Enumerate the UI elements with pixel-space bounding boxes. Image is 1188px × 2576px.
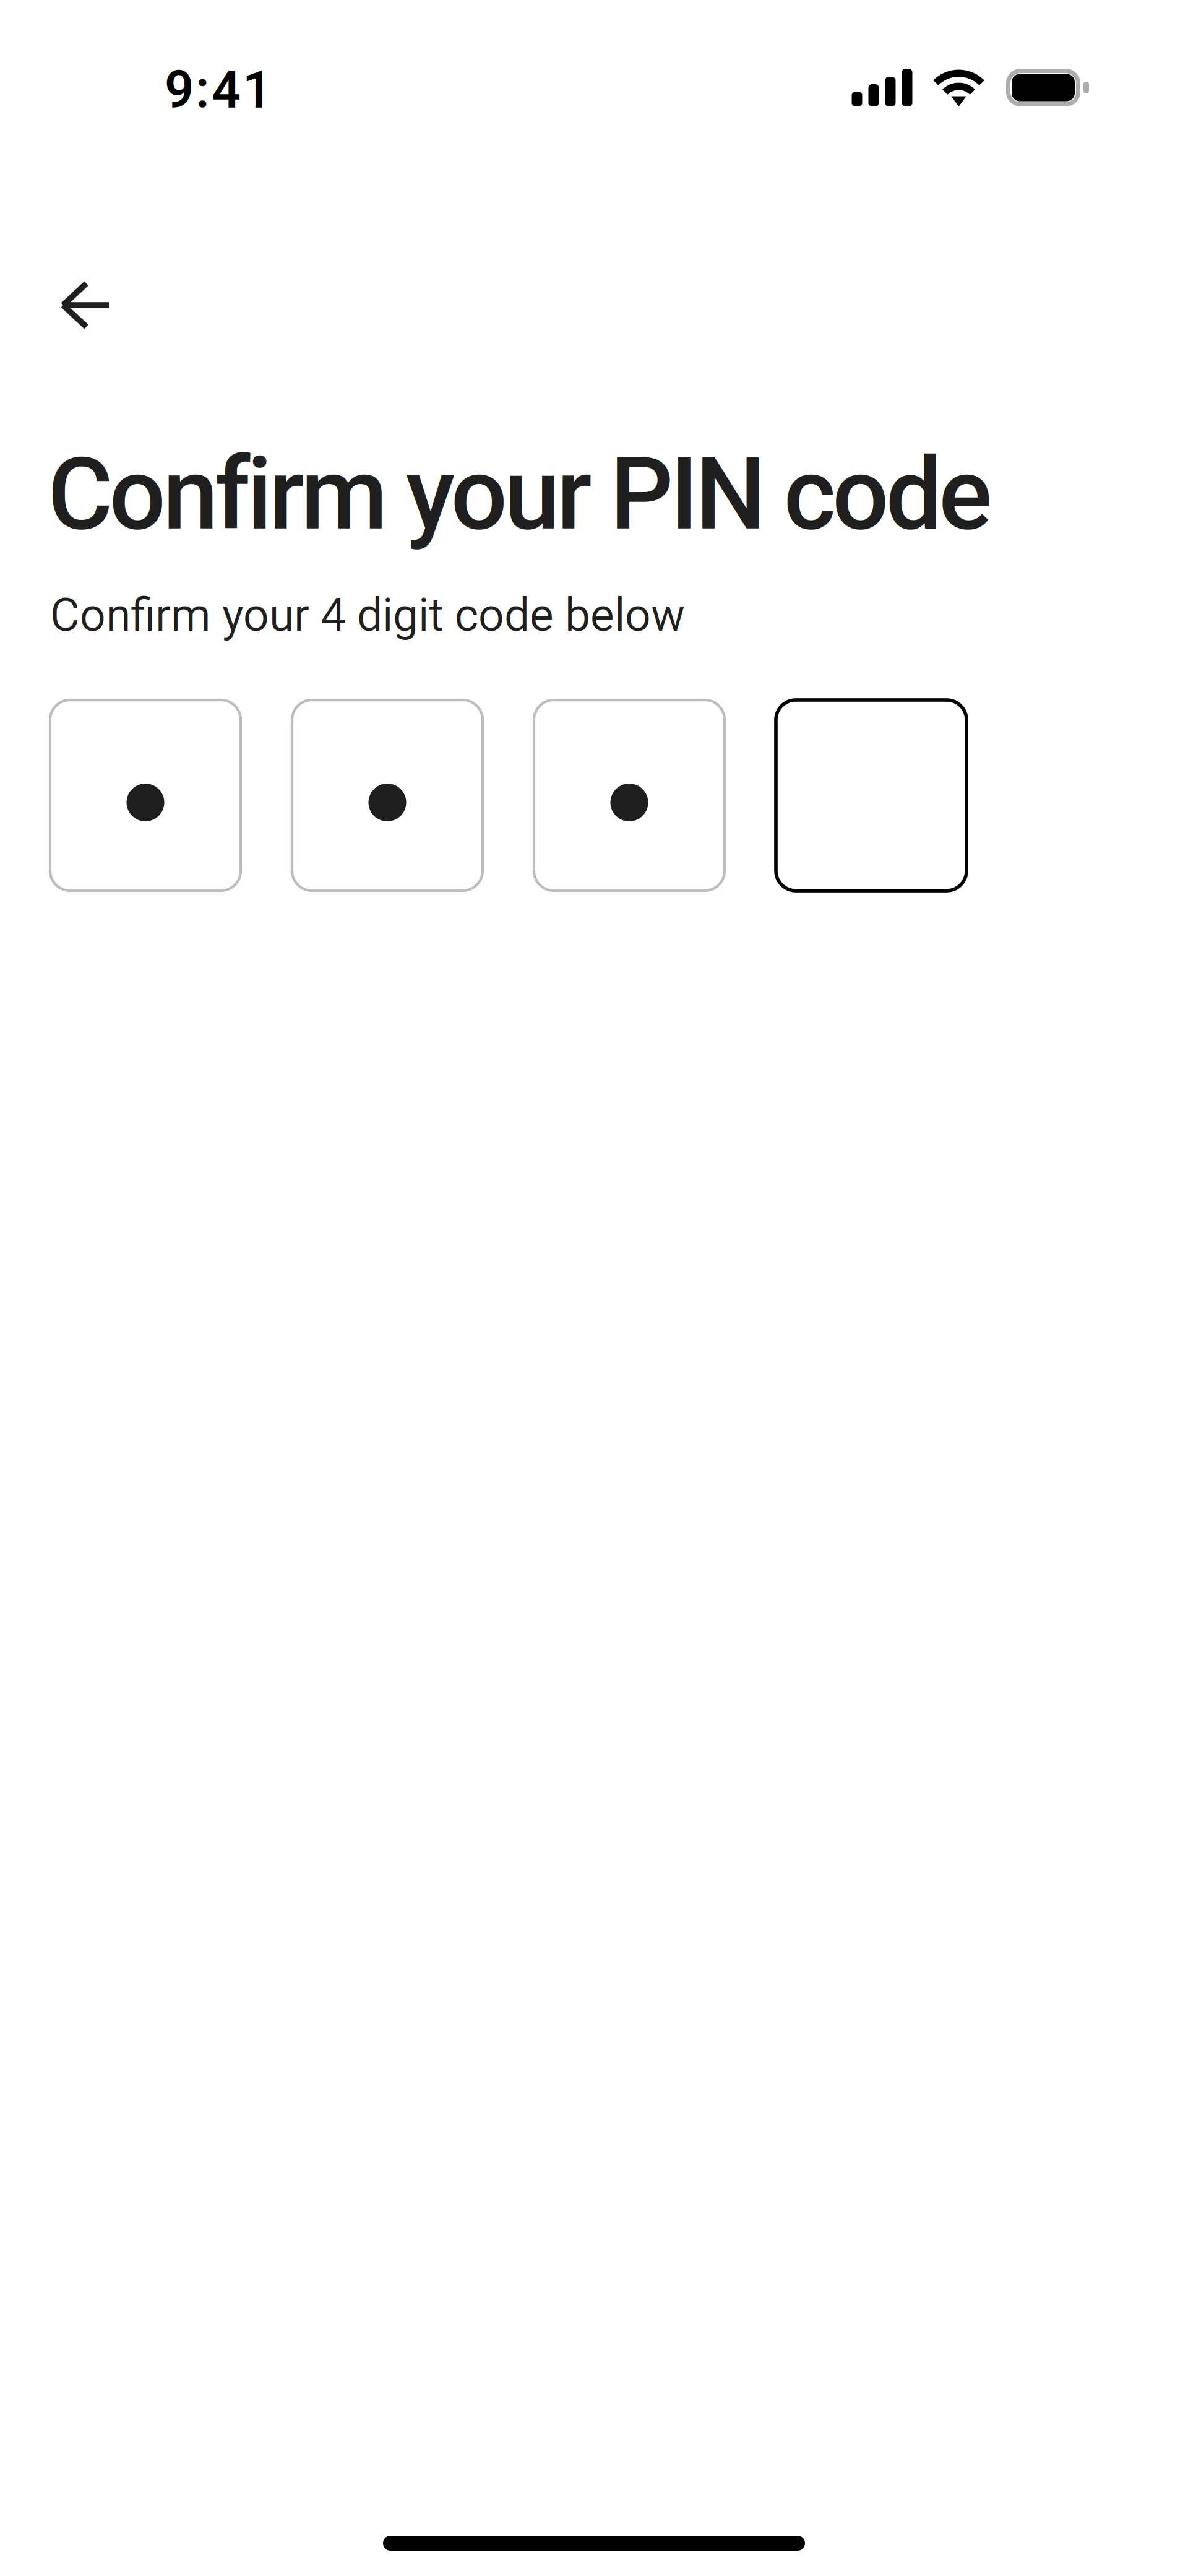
staticText: Confirm your PIN code — [48, 436, 992, 553]
staticText: Confirm your 4 digit code below — [50, 589, 685, 642]
button[interactable]: Back — [39, 260, 130, 350]
staticText: 9:41 — [165, 60, 272, 120]
